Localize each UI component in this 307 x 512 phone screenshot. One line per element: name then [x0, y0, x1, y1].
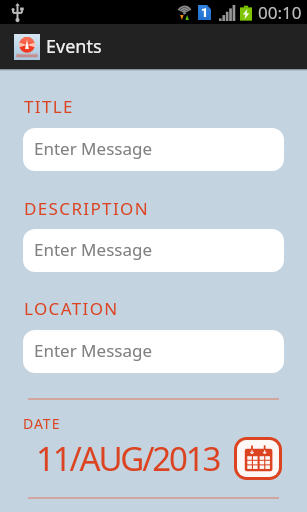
staticText: Enter Message	[34, 137, 152, 160]
staticText: Events	[46, 34, 102, 59]
button[interactable]: Enter Message	[23, 229, 284, 272]
staticText: TITLE	[24, 95, 74, 118]
staticText: DESCRIPTION	[24, 197, 149, 220]
staticText: 11/AUG/2013	[36, 436, 220, 481]
staticText: DATE	[23, 414, 61, 433]
button[interactable]: Enter Message	[23, 330, 284, 373]
staticText: LOCATION	[24, 297, 119, 320]
staticText: 00:10	[258, 1, 302, 24]
button[interactable]: Enter Message	[23, 128, 284, 171]
button[interactable]: Pick date	[234, 437, 282, 480]
staticText: Enter Message	[34, 238, 152, 261]
staticText: Enter Message	[34, 339, 152, 362]
